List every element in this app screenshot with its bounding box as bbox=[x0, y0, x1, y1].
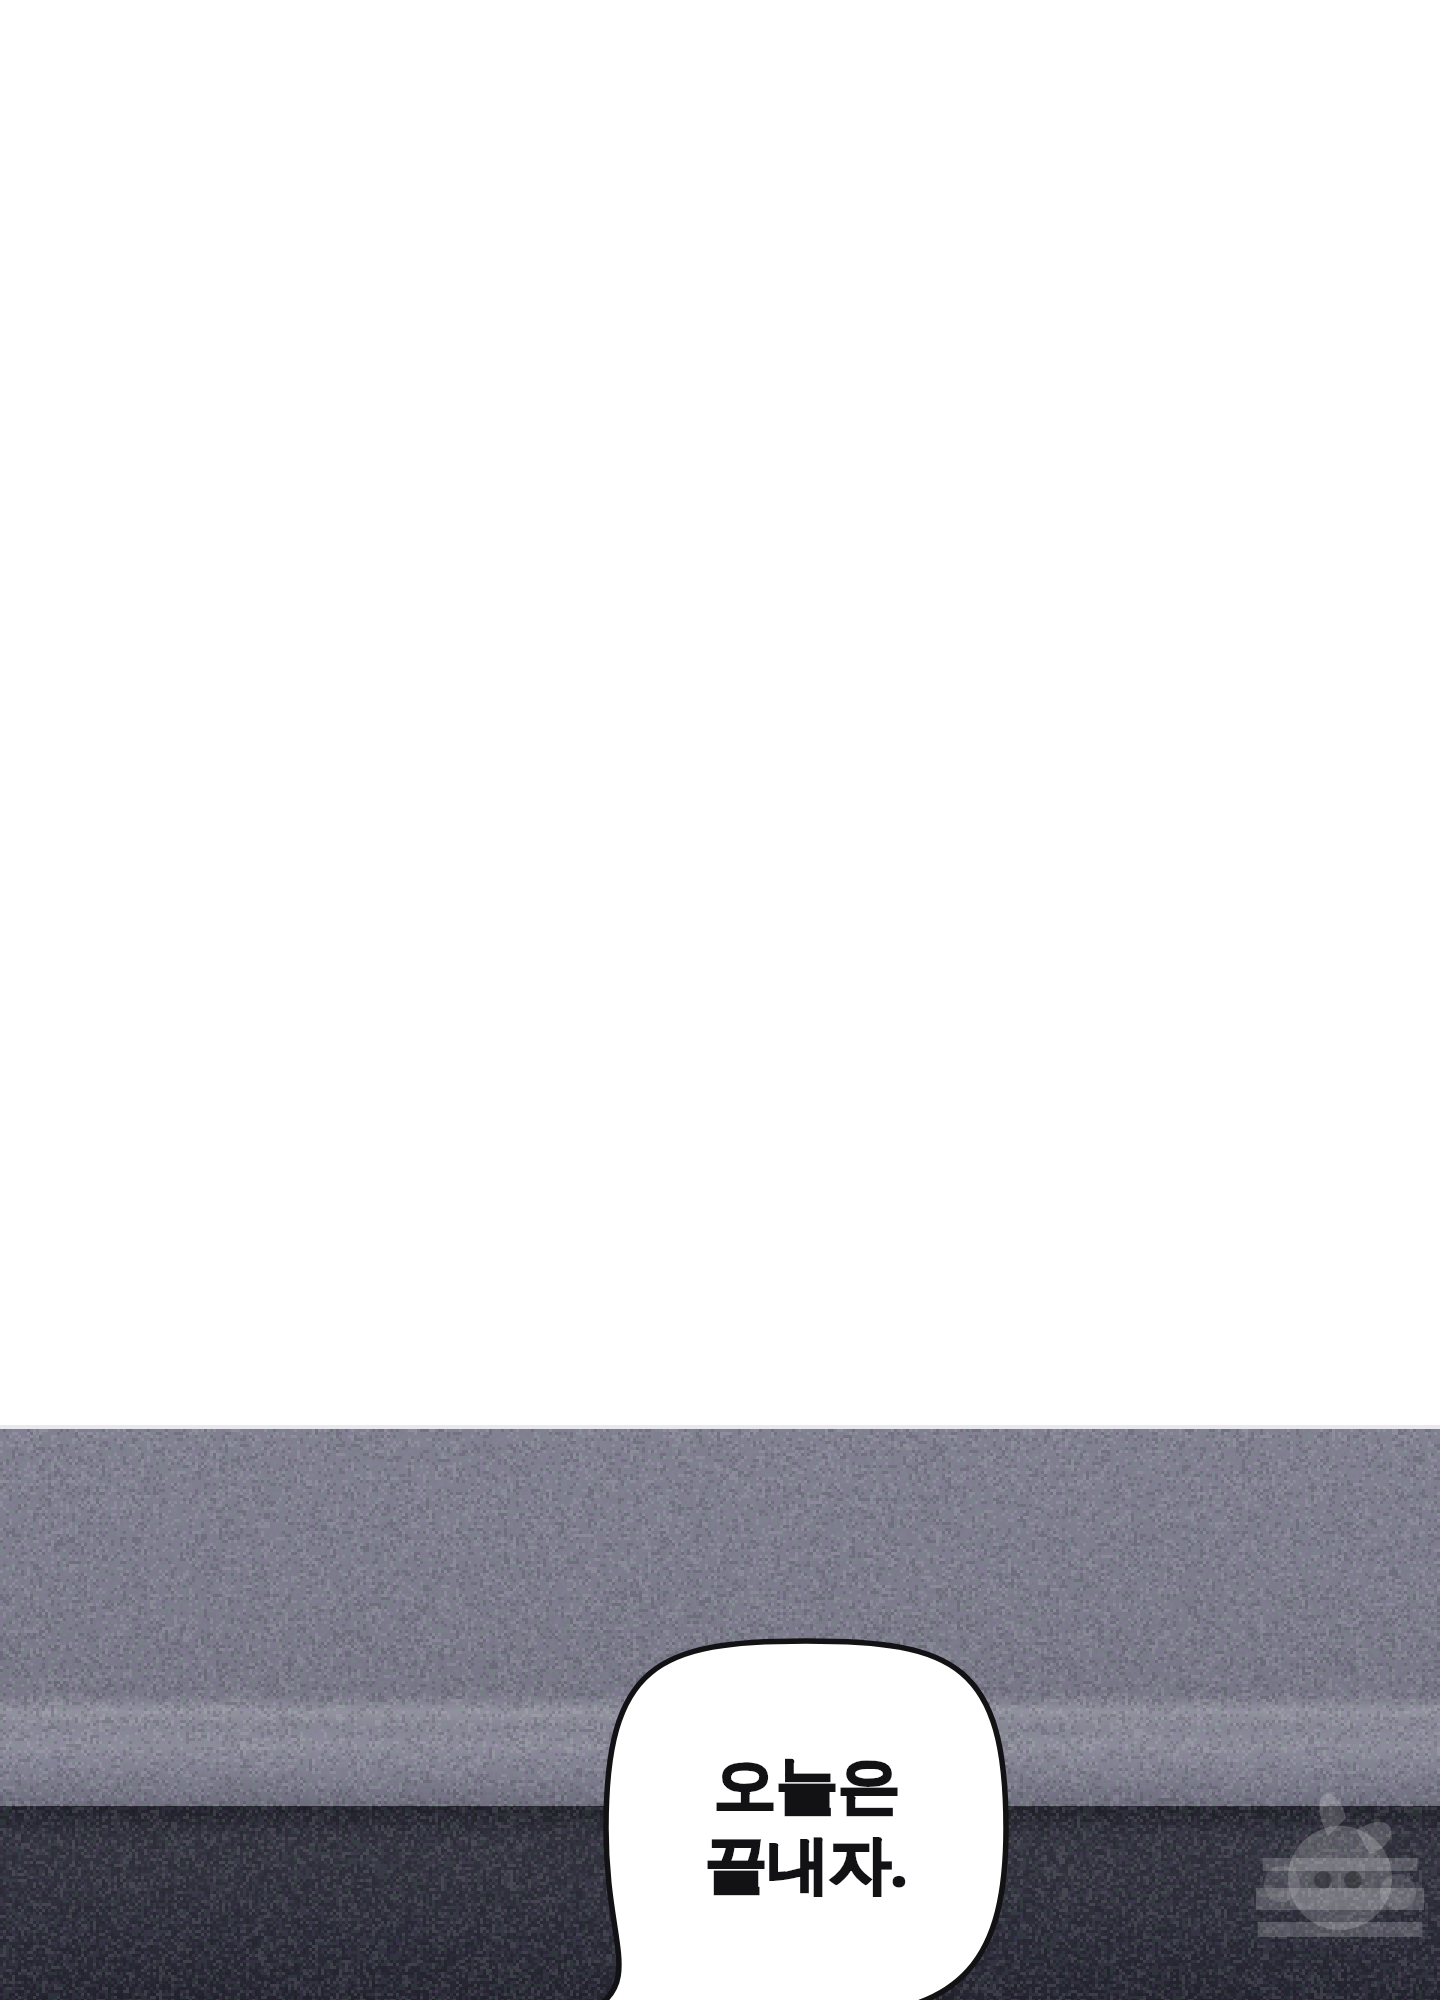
button[interactable]: Comic panel bbox=[0, 0, 1440, 2000]
staticText: 오늘은 끝내자. bbox=[676, 1748, 936, 1905]
